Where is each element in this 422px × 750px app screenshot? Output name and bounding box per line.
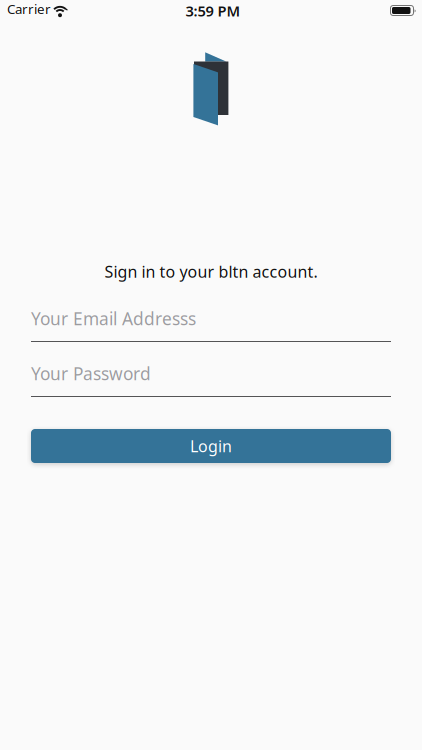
staticText: Login [190,435,232,457]
button[interactable]: Login [31,429,391,463]
staticText: Sign in to your bltn account. [104,261,317,282]
staticText: 3:59 PM [185,1,240,20]
button[interactable]: Your Email Addresss [31,307,391,342]
staticText: Your Password [31,362,151,385]
staticText: Your Email Addresss [31,307,196,330]
staticText: Carrier [7,0,51,18]
button[interactable]: Your Password [31,362,391,397]
